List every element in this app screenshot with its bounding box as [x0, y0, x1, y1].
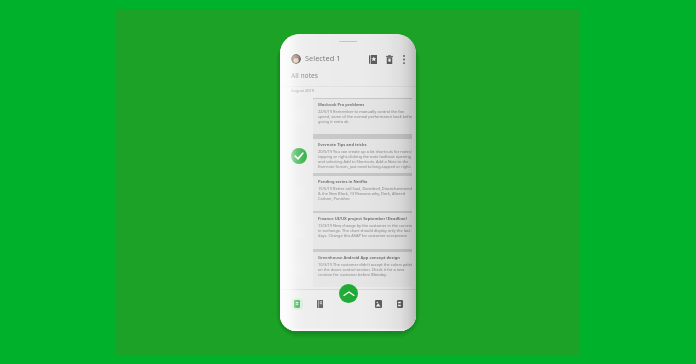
staticText: Selected 1 — [305, 53, 341, 63]
staticText: 22/5/19 Remember to manually control the… — [318, 109, 412, 124]
button[interactable]: Shared with me — [369, 295, 387, 313]
button[interactable]: Notes — [288, 295, 306, 313]
button[interactable]: Account — [391, 295, 409, 313]
button[interactable]: Notebooks — [311, 295, 329, 313]
button[interactable]: Profile — [291, 54, 301, 64]
staticText: 13/3/19 New change by the customer in th… — [318, 223, 412, 238]
button[interactable]: Expand menu — [339, 284, 358, 303]
button[interactable]: Pending series in Netflix — [313, 176, 412, 211]
staticText: Pending series in Netflix — [318, 179, 368, 185]
button[interactable]: Delete — [382, 52, 396, 66]
staticText: August 2019 — [291, 88, 314, 93]
button[interactable]: Greenhouse Android App concept design — [313, 252, 412, 287]
staticText: Greenhouse Android App concept design — [318, 255, 400, 261]
staticText: 10/3/19 The customer didn't accept the c… — [318, 262, 412, 277]
staticText: 20/5/19 You can create up a lot shortcut… — [318, 149, 412, 169]
staticText: 15/5/19 Better call Saul, Daredevil, Dis… — [318, 186, 412, 201]
button[interactable]: Selected note — [291, 148, 307, 164]
button[interactable]: Evernote Tips and tricks — [313, 139, 412, 173]
staticText: Finance UI/UX project September [Deadlin… — [318, 216, 407, 222]
button[interactable]: Macbook Pro problems — [313, 99, 412, 134]
button[interactable]: More options — [397, 52, 411, 66]
button[interactable]: Finance UI/UX project September [Deadlin… — [313, 213, 412, 249]
staticText: Macbook Pro problems — [318, 102, 365, 108]
button[interactable]: Add to notebook — [366, 52, 380, 66]
staticText: All notes — [291, 71, 319, 80]
staticText: Evernote Tips and tricks — [318, 142, 367, 148]
